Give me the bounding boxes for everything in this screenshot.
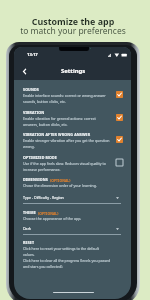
button[interactable]: SOUNDS (14, 87, 131, 104)
staticText: Enable interface sounds: correct or wron… (23, 93, 111, 104)
button[interactable]: Toggle setting (116, 159, 123, 166)
staticText: VIBRATION AFTER WRONG ANSWER (23, 132, 91, 137)
staticText: OPTIMIZED MODE (23, 155, 57, 160)
button[interactable]: THEME (14, 210, 131, 221)
staticText: Use if the app feels slow. Reduces visua… (23, 161, 111, 172)
button[interactable]: Toggle setting (116, 136, 123, 143)
staticText: Choose the appearance of the app. (23, 216, 82, 221)
staticText: 13:17 (27, 52, 38, 58)
staticText: (OPTIONAL) (50, 178, 71, 182)
staticText: Customize the app (0, 15, 148, 27)
staticText: Click here to clear all the progress (le… (23, 258, 111, 269)
staticText: Dark (23, 226, 32, 231)
staticText: to match your preferences (0, 25, 148, 37)
button[interactable]: Toggle setting (116, 114, 123, 121)
staticText: Click here to reset your settings to the… (23, 246, 111, 257)
staticText: Type - Difficulty - Region (23, 195, 64, 200)
staticText: Enable vibration for general actions: co… (23, 116, 111, 127)
button[interactable]: VIBRATION AFTER WRONG ANSWER (14, 132, 131, 149)
staticText: Settings (61, 67, 86, 75)
staticText: VIBRATION (23, 110, 45, 115)
staticText: Enable stronger vibration after you get … (23, 138, 111, 149)
button[interactable]: Type - Difficulty - Region (14, 195, 131, 200)
staticText: (OPTIONAL) (38, 211, 59, 215)
staticText: THEME (23, 210, 36, 215)
button[interactable]: Back (17, 64, 31, 78)
button[interactable]: RESET (14, 240, 131, 257)
staticText: SOUNDS (23, 87, 39, 92)
staticText: Chose the dimension order of your learni… (23, 183, 97, 188)
staticText: RESET (23, 240, 35, 245)
button[interactable]: DIMENSIONS (14, 177, 131, 188)
button[interactable]: Dark (14, 226, 131, 231)
staticText: DIMENSIONS (23, 177, 48, 182)
button[interactable]: VIBRATION (14, 110, 131, 127)
button[interactable]: Toggle setting (116, 91, 123, 98)
button[interactable]: OPTIMIZED MODE (14, 155, 131, 172)
